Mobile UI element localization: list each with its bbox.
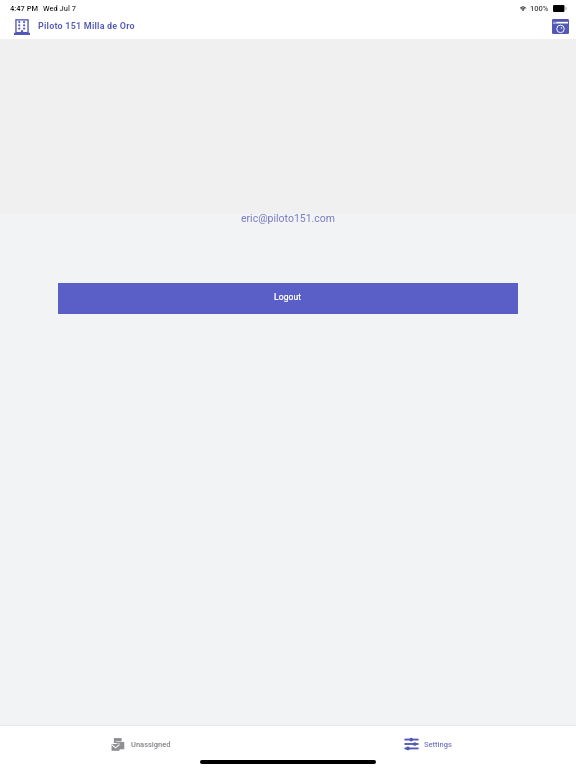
- staticText: Wed Jul 7: [43, 4, 76, 13]
- staticText: 100%: [530, 4, 549, 13]
- button[interactable]: Camera: [548, 15, 572, 38]
- staticText: Piloto 151 Milla de Oro: [38, 21, 135, 32]
- button[interactable]: Settings: [288, 731, 576, 756]
- staticText: 4:47 PM: [10, 4, 39, 13]
- staticText: eric@piloto151.com: [0, 212, 576, 224]
- button[interactable]: Logout: [58, 283, 518, 314]
- button[interactable]: Piloto 151 Milla de Oro: [11, 15, 135, 38]
- staticText: Settings: [424, 740, 452, 749]
- staticText: Logout: [274, 292, 302, 302]
- button[interactable]: Unassigned: [0, 731, 288, 756]
- staticText: Unassigned: [131, 740, 171, 749]
